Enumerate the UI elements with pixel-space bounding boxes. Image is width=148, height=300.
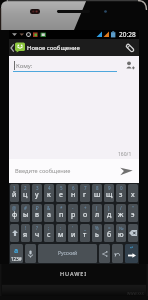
button[interactable]: Add contact [121, 56, 139, 74]
button[interactable]: ↵ [125, 244, 138, 263]
button[interactable]: 5 [56, 184, 66, 202]
button[interactable]: № [116, 224, 126, 242]
staticText: + [84, 205, 87, 211]
staticText: э [131, 210, 135, 220]
staticText: - [72, 205, 74, 211]
button[interactable]: 9 [104, 184, 114, 202]
staticText: Введите сообщение [15, 167, 71, 175]
button[interactable]: - [68, 204, 78, 222]
button[interactable]: + [80, 204, 90, 222]
button[interactable]: / [116, 204, 126, 222]
button[interactable]: " [128, 204, 138, 222]
button[interactable]: 3 [32, 184, 42, 202]
staticText: ь [95, 230, 99, 240]
button[interactable]: ! [21, 224, 30, 242]
staticText: HUAWEI [60, 270, 88, 277]
staticText: Русский [58, 250, 78, 257]
staticText: 6 [72, 185, 75, 191]
staticText: д [107, 210, 112, 220]
button[interactable]: # [21, 204, 30, 222]
button[interactable]: ₽ [32, 204, 42, 222]
button[interactable]: * [56, 204, 66, 222]
button[interactable]: Русский [38, 244, 97, 263]
staticText: ц [23, 190, 28, 200]
staticText: 9 [108, 185, 111, 191]
staticText: й [12, 190, 17, 200]
button[interactable] [25, 244, 36, 263]
button[interactable]: _ [80, 224, 90, 242]
staticText: ю [118, 230, 124, 240]
button[interactable]: 8 [92, 184, 102, 202]
staticText: № [119, 225, 124, 231]
button[interactable]: Введите сообщение [15, 159, 115, 183]
staticText: 160/1 [118, 151, 132, 158]
button[interactable]: х [128, 184, 138, 202]
button[interactable]: 6 [68, 184, 78, 202]
staticText: 3 [36, 185, 39, 191]
button[interactable]: 1 [10, 184, 19, 202]
button[interactable] [112, 244, 123, 263]
staticText: ж [118, 210, 124, 220]
staticText: р [71, 210, 76, 220]
staticText: _ [84, 225, 86, 231]
button[interactable]: @ [10, 204, 19, 222]
button[interactable] [10, 224, 19, 242]
button[interactable]: Send [115, 159, 137, 183]
staticText: ' [72, 225, 74, 231]
staticText: ! [25, 225, 27, 231]
staticText: & [47, 205, 51, 211]
button[interactable]: 4 [44, 184, 54, 202]
staticText: 2 [24, 185, 27, 191]
button[interactable]: ? [32, 224, 42, 242]
staticText: 8 [96, 185, 99, 191]
button[interactable]: 2 [21, 184, 30, 202]
staticText: : [60, 225, 62, 231]
staticText: г [83, 190, 87, 200]
staticText: " [132, 205, 134, 211]
staticText: = [108, 225, 111, 231]
button[interactable]: Back [9, 39, 25, 56]
staticText: 4 [48, 185, 51, 191]
button[interactable]: 0 [116, 184, 126, 202]
staticText: л [95, 210, 100, 220]
staticText: я [23, 230, 28, 240]
staticText: а [47, 210, 51, 220]
button[interactable]: Attach [121, 39, 138, 56]
staticText: % [95, 225, 99, 231]
staticText: и [71, 230, 76, 240]
button[interactable]: 7 [80, 184, 90, 202]
button[interactable]: = [104, 224, 114, 242]
button[interactable]: & [44, 204, 54, 222]
staticText: 0 [120, 185, 123, 191]
staticText: 123# [11, 256, 22, 262]
button[interactable] [128, 224, 138, 242]
staticText: # [24, 205, 27, 211]
staticText: м [58, 230, 64, 240]
staticText: ф [12, 210, 18, 220]
staticText: Новое сообщение [27, 44, 80, 52]
staticText: б [107, 230, 112, 240]
button[interactable]: a [10, 244, 23, 263]
button[interactable]: ) [104, 204, 114, 222]
staticText: с [47, 230, 51, 240]
staticText: е [59, 190, 63, 200]
staticText: к [47, 190, 51, 200]
staticText: ; [48, 225, 50, 231]
button[interactable]: ( [92, 204, 102, 222]
staticText: 5 [60, 185, 63, 191]
staticText: 20:28 [119, 30, 136, 39]
button[interactable]: Кому: [9, 56, 121, 74]
staticText: у [35, 190, 39, 200]
staticText: ₽ [36, 205, 39, 211]
staticText: ( [96, 205, 98, 211]
button[interactable]: : [56, 224, 66, 242]
button[interactable]: % [92, 224, 102, 242]
button[interactable]: ' [68, 224, 78, 242]
button[interactable] [99, 244, 110, 263]
staticText: a [14, 246, 19, 256]
staticText: / [120, 205, 122, 211]
button[interactable]: ; [44, 224, 54, 242]
staticText: WWW.XXX [127, 291, 144, 296]
staticText: щ [106, 190, 113, 200]
staticText: 1 [13, 185, 16, 191]
